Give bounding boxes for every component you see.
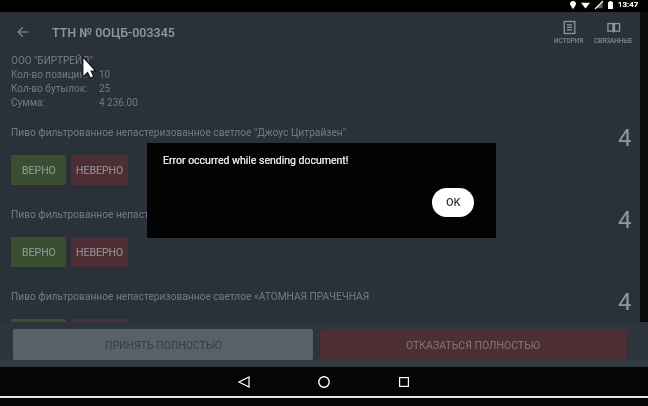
staticText: Пиво фильтрованное непастеризованное све…: [11, 291, 370, 303]
button[interactable]: ВЕРНО: [11, 237, 66, 267]
staticText: 10: [99, 69, 111, 81]
staticText: 4: [618, 288, 632, 316]
staticText: 4 236.00: [99, 97, 138, 109]
staticText: Error occurred while sending document!: [163, 154, 349, 166]
button[interactable]: НЕВЕРНО: [71, 155, 128, 185]
staticText: ООО "БИРТРЕЙД": [11, 55, 93, 67]
button[interactable]: ИСТОРИЯ: [547, 12, 591, 52]
staticText: 4: [618, 124, 632, 152]
staticText: ВЕРНО: [22, 164, 56, 176]
staticText: Кол-во позиции:: [11, 69, 88, 81]
button[interactable]: Пиво фильтрованное непастеризованное све…: [0, 286, 648, 368]
staticText: ПРИНЯТЬ ПОЛНОСТЬЮ: [105, 339, 222, 351]
button[interactable]: Back: [224, 367, 264, 396]
staticText: 4: [618, 206, 632, 234]
staticText: Пиво фильтрованное непастеризованное све…: [11, 127, 347, 139]
staticText: СВЯЗАННЫЕ: [594, 37, 633, 45]
button[interactable]: ВЕРНО: [11, 319, 66, 349]
button[interactable]: Пиво фильтрованное непастеризованное све…: [0, 122, 648, 204]
staticText: 13:47: [618, 0, 639, 9]
staticText: НЕВЕРНО: [76, 164, 124, 176]
staticText: Пиво фильтрованное непастеризованное све…: [11, 209, 347, 221]
button[interactable]: Back: [7, 12, 39, 52]
staticText: Сумма:: [11, 97, 45, 109]
button[interactable]: НЕВЕРНО: [71, 319, 128, 349]
button[interactable]: НЕВЕРНО: [71, 237, 128, 267]
staticText: ВЕРНО: [22, 246, 56, 258]
button[interactable]: Recents: [384, 367, 424, 396]
button[interactable]: Home: [304, 367, 344, 396]
staticText: 25: [99, 83, 111, 95]
staticText: ТТН № 0ОЦБ-003345: [52, 25, 175, 40]
staticText: НЕВЕРНО: [76, 328, 124, 340]
button[interactable]: ОТКАЗАТЬСЯ ПОЛНОСТЬЮ: [320, 329, 627, 360]
staticText: ОТКАЗАТЬСЯ ПОЛНОСТЬЮ: [406, 339, 541, 351]
staticText: НЕВЕРНО: [76, 246, 124, 258]
button[interactable]: Error occurred while sending document!: [147, 143, 496, 238]
button[interactable]: Пиво фильтрованное непастеризованное све…: [0, 204, 648, 286]
button[interactable]: ВЕРНО: [11, 155, 66, 185]
staticText: ИСТОРИЯ: [554, 37, 584, 45]
button[interactable]: СВЯЗАННЫЕ: [591, 12, 635, 52]
staticText: Кол-во бутылок:: [11, 83, 88, 95]
staticText: OK: [446, 196, 461, 209]
button[interactable]: OK: [432, 188, 474, 217]
button[interactable]: ПРИНЯТЬ ПОЛНОСТЬЮ: [13, 329, 313, 360]
staticText: ВЕРНО: [22, 328, 56, 340]
